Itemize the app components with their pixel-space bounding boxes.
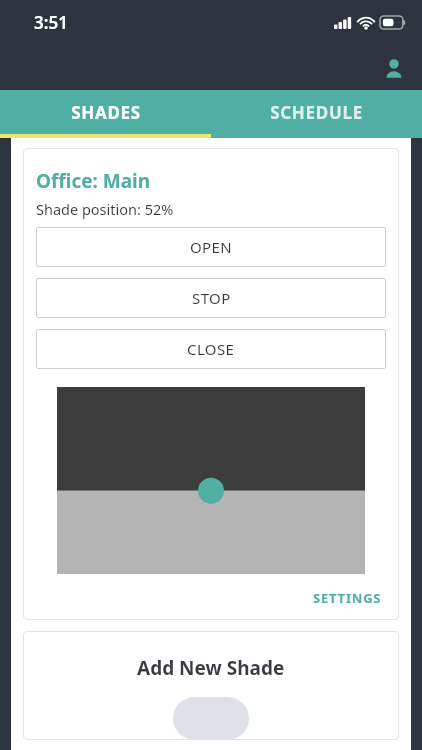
- staticText: STOP: [192, 288, 231, 308]
- button[interactable]: STOP: [36, 278, 386, 318]
- staticText: CLOSE: [187, 339, 235, 359]
- button[interactable]: CLOSE: [36, 329, 386, 369]
- staticText: SHADES: [71, 101, 141, 124]
- button[interactable]: OPEN: [36, 227, 386, 267]
- staticText: SCHEDULE: [270, 101, 363, 124]
- staticText: Office: Main: [36, 168, 151, 194]
- button[interactable]: SCHEDULE: [211, 90, 422, 138]
- staticText: 3:51: [34, 11, 68, 34]
- staticText: Shade position: 52%: [36, 199, 174, 219]
- button[interactable]: Add New Shade: [23, 631, 399, 740]
- button[interactable]: SETTINGS: [309, 586, 386, 610]
- staticText: OPEN: [190, 237, 233, 257]
- staticText: SETTINGS: [313, 589, 382, 607]
- staticText: Add New Shade: [137, 655, 285, 681]
- button[interactable]: Account: [376, 51, 412, 87]
- button[interactable]: SHADES: [0, 90, 211, 138]
